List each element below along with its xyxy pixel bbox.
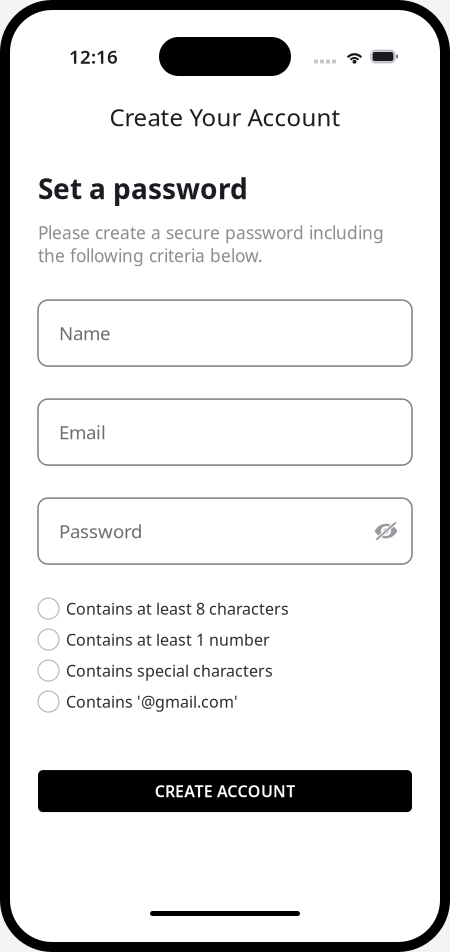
staticText: Set a password <box>38 170 248 207</box>
staticText: Contains at least 1 number <box>66 629 270 650</box>
staticText: 12:16 <box>69 44 118 69</box>
staticText: CREATE ACCOUNT <box>155 780 295 802</box>
button[interactable]: Name <box>38 300 412 366</box>
staticText: Name <box>59 321 111 345</box>
button[interactable]: CREATE ACCOUNT <box>38 770 412 812</box>
staticText: Contains special characters <box>66 660 273 681</box>
button[interactable]: Password <box>38 498 412 564</box>
staticText: Please create a secure password includin… <box>38 221 384 267</box>
staticText: Email <box>59 420 106 444</box>
staticText: Contains at least 8 characters <box>66 598 289 619</box>
staticText: Create Your Account <box>109 101 340 133</box>
button[interactable]: Show password <box>374 521 398 541</box>
staticText: Contains '@gmail.com' <box>66 691 238 712</box>
staticText: Password <box>59 519 142 543</box>
button[interactable]: Email <box>38 399 412 465</box>
